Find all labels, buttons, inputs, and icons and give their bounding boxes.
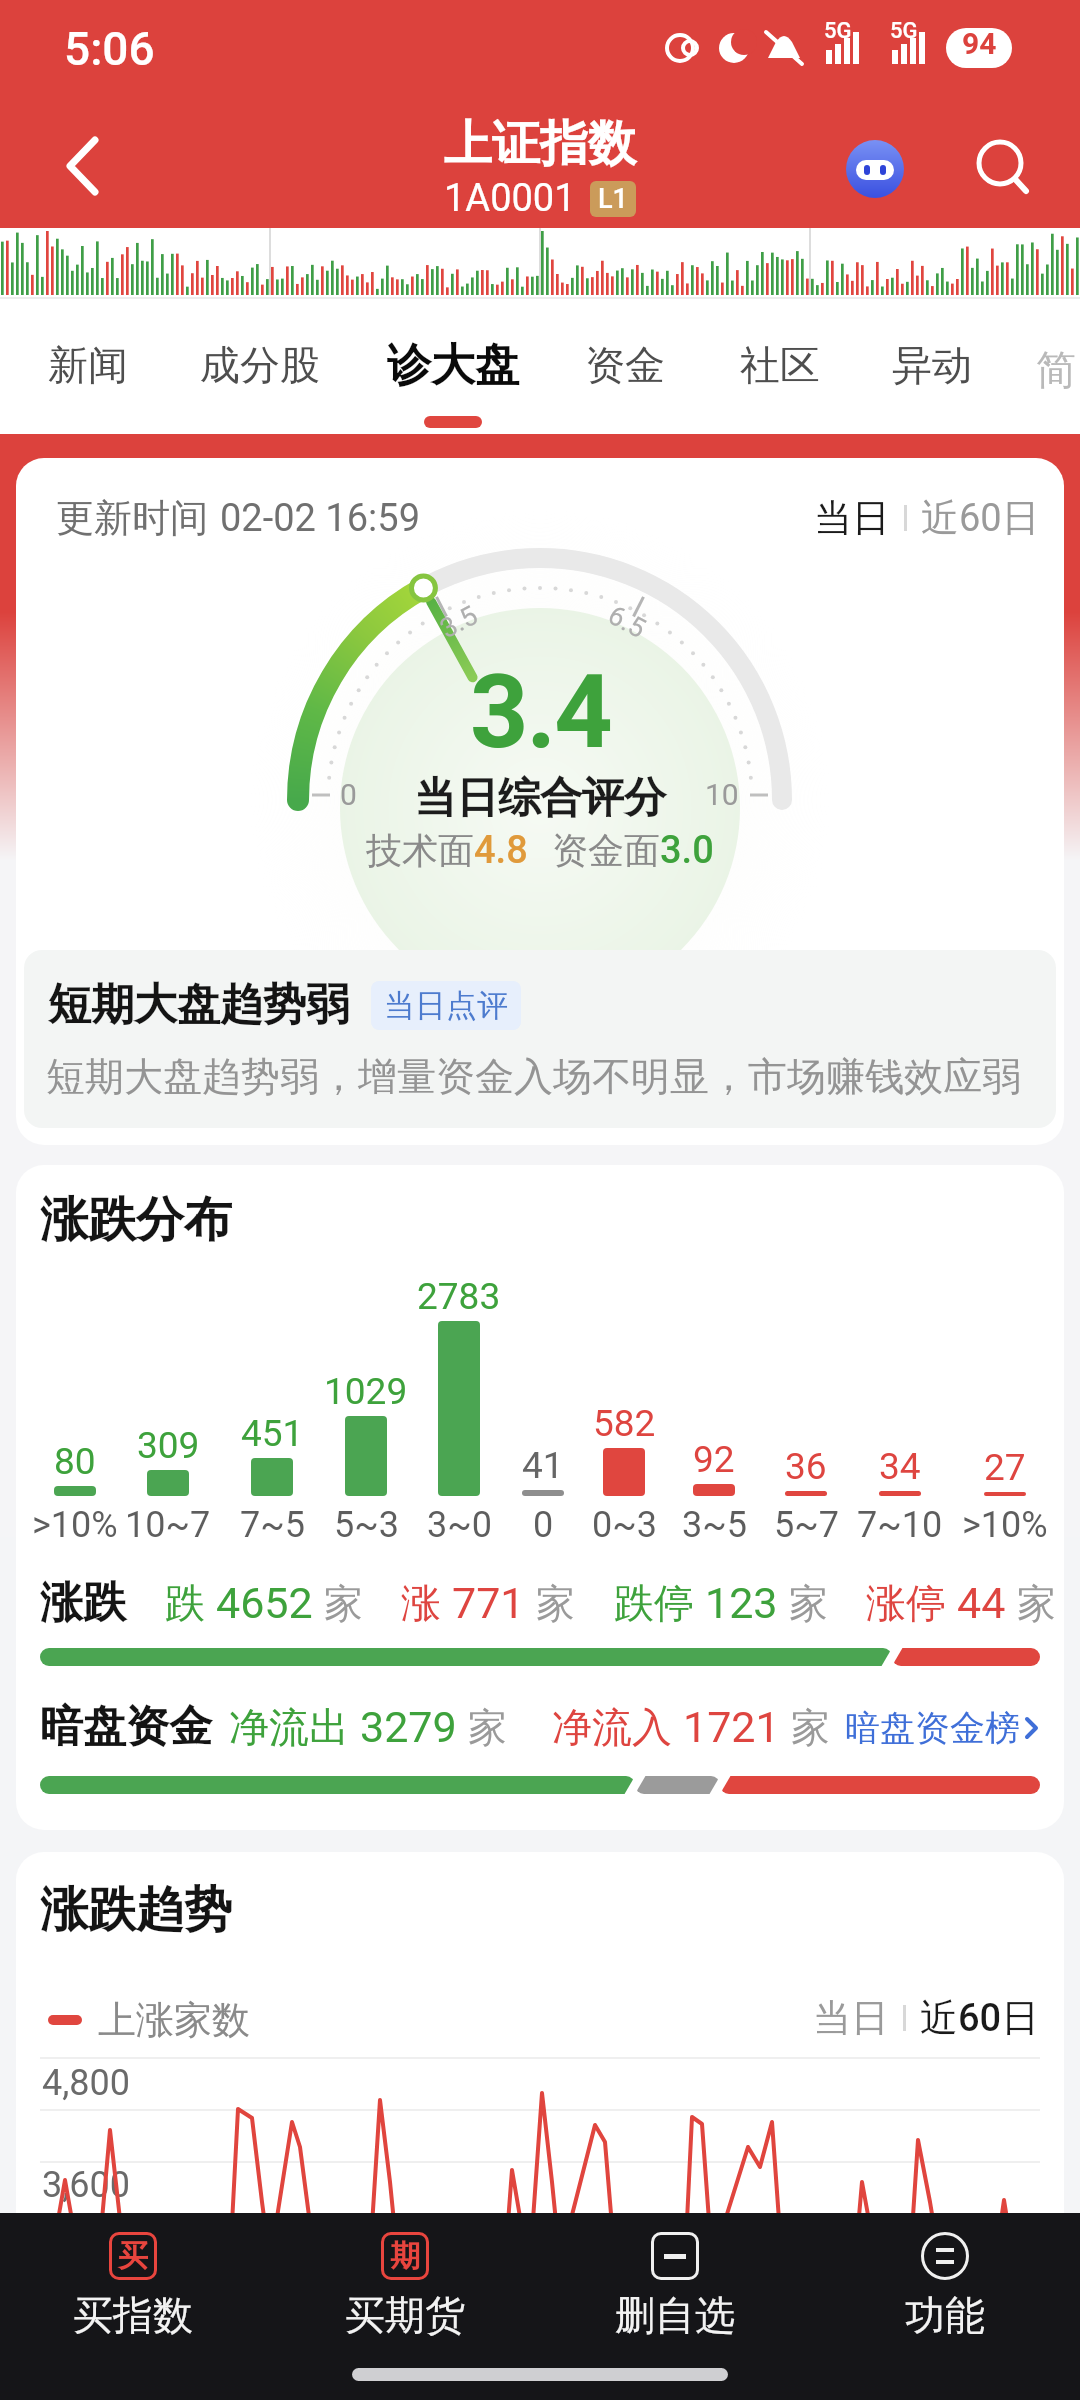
staticText: 5G <box>824 18 852 44</box>
staticText: 582 <box>593 1402 656 1445</box>
staticText: 1721 <box>683 1702 780 1752</box>
staticText: 家 <box>1017 1579 1056 1628</box>
staticText: 短期大盘趋势弱，增量资金入场不明显，市场赚钱效应弱 <box>46 1052 1021 1101</box>
staticText: 4,800 <box>42 2062 131 2104</box>
button[interactable] <box>48 130 120 202</box>
staticText: 简 <box>1036 345 1076 395</box>
staticText: 期 <box>390 2237 420 2275</box>
staticText: 当日 <box>813 1994 889 2042</box>
staticText: L1 <box>598 183 628 215</box>
staticText: 买指数 <box>73 2290 193 2340</box>
staticText: 当日点评 <box>384 986 508 1025</box>
staticText: 技术面 <box>366 828 474 873</box>
staticText: 异动 <box>892 340 972 390</box>
staticText: 社区 <box>740 340 820 390</box>
staticText: 涨跌趋势 <box>40 1880 232 1940</box>
staticText: 更新时间 <box>56 494 208 542</box>
staticText: 净流入 <box>552 1702 672 1752</box>
staticText: 7~10 <box>857 1504 943 1546</box>
staticText: 3~5 <box>682 1504 747 1546</box>
button[interactable]: 功能 <box>845 2232 1045 2352</box>
staticText: 功能 <box>905 2290 985 2340</box>
staticText: 1A0001 <box>444 176 576 221</box>
staticText: 3~0 <box>427 1504 492 1546</box>
staticText: 家 <box>536 1579 575 1628</box>
staticText: 3.5 <box>435 599 483 645</box>
staticText: 92 <box>693 1438 735 1481</box>
staticText: 771 <box>452 1578 525 1628</box>
staticText: 27 <box>984 1446 1026 1489</box>
staticText: 家 <box>789 1579 828 1628</box>
button[interactable]: 暗盘资金榜 <box>820 1706 1044 1750</box>
staticText: 短期大盘趋势弱 <box>48 978 349 1032</box>
staticText: 36 <box>785 1445 827 1488</box>
staticText: 0 <box>533 1504 554 1546</box>
staticText: 3.0 <box>660 828 714 873</box>
staticText: 44 <box>957 1578 1006 1628</box>
button[interactable]: 异动 <box>852 320 1012 410</box>
staticText: 净流出 <box>229 1702 349 1752</box>
staticText: 买 <box>118 2237 148 2275</box>
staticText: 家 <box>791 1703 830 1752</box>
staticText: 0 <box>340 777 357 812</box>
staticText: 涨跌分布 <box>40 1190 232 1250</box>
staticText: 5~7 <box>774 1504 839 1546</box>
button[interactable]: 买 <box>33 2232 233 2352</box>
staticText: 2783 <box>417 1275 501 1318</box>
button[interactable]: 当日 <box>700 494 1040 542</box>
button[interactable]: 社区 <box>700 320 860 410</box>
staticText: 家 <box>324 1579 363 1628</box>
staticText: 34 <box>879 1445 921 1488</box>
staticText: 4.8 <box>474 828 528 873</box>
staticText: 删自选 <box>615 2290 735 2340</box>
button[interactable] <box>844 136 906 198</box>
staticText: 新闻 <box>48 340 128 390</box>
staticText: 3279 <box>360 1702 457 1752</box>
staticText: 5:06 <box>64 22 155 76</box>
staticText: 暗盘资金 <box>40 1700 212 1754</box>
staticText: 451 <box>241 1412 304 1455</box>
staticText: 3.4 <box>470 652 611 772</box>
staticText: 近60日 <box>921 494 1040 542</box>
staticText: 跌停 <box>614 1578 694 1628</box>
button[interactable]: 资金 <box>545 320 705 410</box>
staticText: 1029 <box>324 1370 408 1413</box>
staticText: 涨停 <box>866 1578 946 1628</box>
staticText: 成分股 <box>200 340 320 390</box>
staticText: >10% <box>32 1504 118 1546</box>
staticText: 123 <box>705 1578 778 1628</box>
staticText: 资金 <box>585 340 665 390</box>
staticText: 上证指数 <box>444 114 636 174</box>
staticText: 涨 <box>401 1578 441 1628</box>
staticText: 6.5 <box>603 599 651 645</box>
button[interactable]: 成分股 <box>180 320 340 410</box>
staticText: 4652 <box>216 1578 313 1628</box>
staticText: 暗盘资金榜 <box>845 1706 1020 1750</box>
button[interactable]: 新闻 <box>8 320 168 410</box>
staticText: 94 <box>962 26 997 61</box>
staticText: 80 <box>54 1440 96 1483</box>
staticText: 41 <box>522 1444 564 1487</box>
staticText: 0~3 <box>592 1504 657 1546</box>
staticText: 5G <box>890 18 918 44</box>
staticText: 309 <box>137 1424 200 1467</box>
staticText: 买期货 <box>345 2290 465 2340</box>
staticText: 涨跌 <box>40 1576 126 1630</box>
staticText: 3,600 <box>42 2164 131 2206</box>
button[interactable]: 诊大盘 <box>373 320 533 410</box>
staticText: 10~7 <box>125 1504 211 1546</box>
staticText: >10% <box>962 1504 1048 1546</box>
staticText: 10 <box>705 777 739 812</box>
staticText: 跌 <box>165 1578 205 1628</box>
staticText: 5~3 <box>334 1504 399 1546</box>
button[interactable]: 删自选 <box>575 2232 775 2352</box>
staticText: 诊大盘 <box>387 338 519 393</box>
button[interactable]: 当日 <box>700 1994 1040 2042</box>
button[interactable]: 期 <box>305 2232 505 2352</box>
staticText: 当日 <box>814 494 890 542</box>
staticText: 当日综合评分 <box>414 772 666 825</box>
button[interactable] <box>970 134 1036 200</box>
staticText: 7~5 <box>240 1504 305 1546</box>
staticText: 上涨家数 <box>98 1996 250 2044</box>
staticText: 家 <box>468 1703 507 1752</box>
